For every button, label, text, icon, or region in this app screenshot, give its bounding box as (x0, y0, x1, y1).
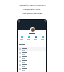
staticText: Celebrate Your (23, 7, 41, 10)
button[interactable] (19, 47, 45, 51)
button[interactable] (20, 36, 23, 40)
button[interactable] (19, 55, 45, 59)
button[interactable] (27, 36, 30, 40)
button[interactable] (19, 67, 45, 71)
staticText: Monitor Your Progress (19, 3, 46, 6)
button[interactable] (19, 63, 45, 67)
button[interactable] (34, 36, 37, 40)
staticText: Personal Records (22, 11, 43, 14)
button[interactable] (19, 51, 45, 55)
button[interactable] (41, 36, 44, 40)
button[interactable] (19, 59, 45, 63)
